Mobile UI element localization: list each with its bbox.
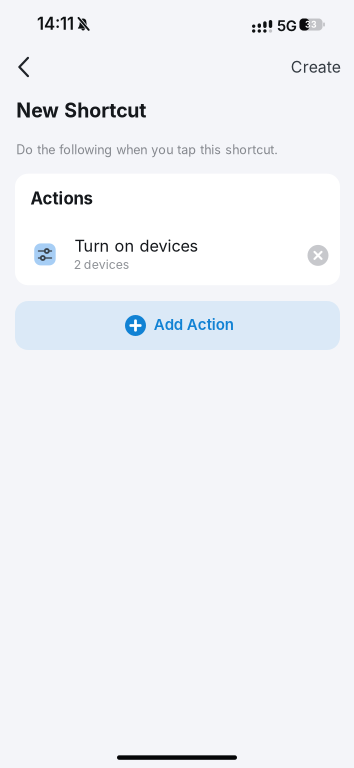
staticText: 14:11 [37,14,74,34]
staticText: 2 devices [74,257,129,272]
button[interactable]: Create [291,57,341,77]
button[interactable]: Back [7,50,41,84]
button[interactable]: Add Action [15,301,340,350]
staticText: Add Action [154,315,234,333]
staticText: Do the following when you tap this short… [16,142,278,157]
button[interactable]: Remove action [307,245,328,266]
staticText: New Shortcut [16,99,146,122]
staticText: Actions [30,188,92,209]
button[interactable]: Turn on devices [15,230,300,272]
staticText: Turn on devices [74,236,198,256]
staticText: 5G [277,17,297,35]
staticText: 33 [305,19,317,30]
staticText: Create [291,57,341,77]
